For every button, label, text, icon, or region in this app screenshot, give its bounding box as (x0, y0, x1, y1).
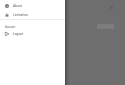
button[interactable]: Limitation (0, 10, 65, 19)
staticText: Account (5, 25, 16, 29)
button[interactable]: About (0, 1, 65, 10)
other: About (5, 4, 9, 8)
other: Limitation (5, 13, 9, 17)
staticText: About (13, 4, 22, 8)
button[interactable]: Logout (0, 29, 65, 38)
staticText: Limitation (13, 13, 29, 17)
staticText: Logout (13, 32, 24, 36)
other: Logout (5, 32, 9, 36)
